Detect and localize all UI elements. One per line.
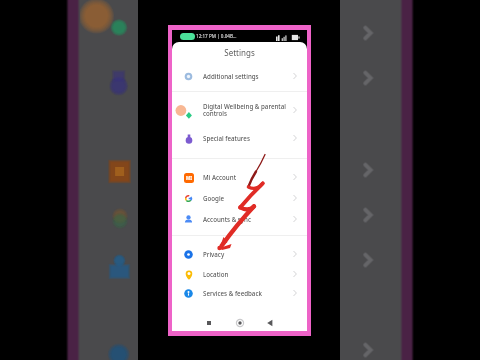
staticText: 12:17 PM | 0.04B... (196, 33, 237, 39)
button[interactable]: Back (264, 317, 276, 329)
button[interactable]: Location (172, 265, 307, 283)
staticText: Accounts & sync (203, 215, 252, 223)
button[interactable]: Special features (172, 129, 307, 147)
staticText: Location (203, 270, 229, 278)
staticText: Privacy (203, 250, 225, 258)
staticText: Digital Wellbeing & parental controls (203, 102, 286, 118)
button[interactable]: Accounts & sync (172, 210, 307, 228)
staticText: Services & feedback (203, 289, 262, 297)
staticText: MI (186, 175, 192, 181)
button[interactable]: MI (172, 168, 307, 186)
button[interactable]: Home (234, 317, 246, 329)
staticText: Special features (203, 134, 250, 142)
staticText: Settings (172, 47, 307, 58)
staticText: Mi Account (203, 173, 236, 181)
button[interactable]: Additional settings (172, 67, 307, 85)
staticText: Google (203, 194, 225, 202)
button[interactable]: Privacy (172, 245, 307, 263)
button[interactable]: Google (172, 189, 307, 207)
button[interactable]: Recents (203, 317, 215, 329)
button[interactable]: Digital Wellbeing & parental controls (172, 101, 307, 119)
button[interactable]: Services & feedback (172, 284, 307, 302)
staticText: Additional settings (203, 72, 259, 80)
